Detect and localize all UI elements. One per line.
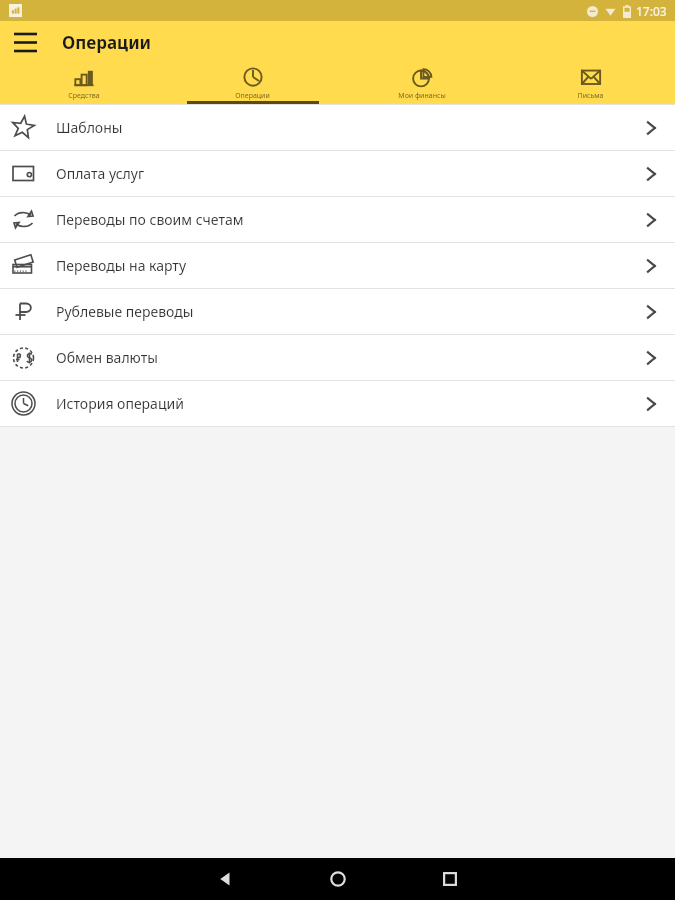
staticText: Шаблоны <box>56 118 123 137</box>
button[interactable]: Письма <box>506 63 675 104</box>
button[interactable]: Оплата услуг <box>0 151 675 196</box>
staticText: Мои финансы <box>398 91 446 101</box>
button[interactable]: Переводы по своим счетам <box>0 197 675 242</box>
staticText: Обмен валюты <box>56 348 158 367</box>
button[interactable]: Обмен валюты <box>0 335 675 380</box>
staticText: Средства <box>68 91 100 101</box>
button[interactable]: Рублевые переводы <box>0 289 675 334</box>
staticText: Переводы по своим счетам <box>56 210 244 229</box>
button[interactable]: Recent apps <box>423 858 477 900</box>
staticText: Операции <box>62 31 152 54</box>
staticText: Рублевые переводы <box>56 302 194 321</box>
staticText: Операции <box>235 91 270 101</box>
button[interactable]: Операции <box>168 63 337 104</box>
staticText: История операций <box>56 394 184 413</box>
staticText: Переводы на карту <box>56 256 187 275</box>
button[interactable]: История операций <box>0 381 675 426</box>
button[interactable]: Средства <box>0 63 168 104</box>
button[interactable]: Home <box>311 858 365 900</box>
staticText: Оплата услуг <box>56 164 145 183</box>
button[interactable]: Menu <box>6 23 44 61</box>
staticText: 17:03 <box>636 3 667 19</box>
button[interactable]: Мои финансы <box>337 63 506 104</box>
staticText: Письма <box>577 91 604 101</box>
button[interactable]: Back <box>199 858 253 900</box>
button[interactable]: Переводы на карту <box>0 243 675 288</box>
button[interactable]: Шаблоны <box>0 105 675 150</box>
